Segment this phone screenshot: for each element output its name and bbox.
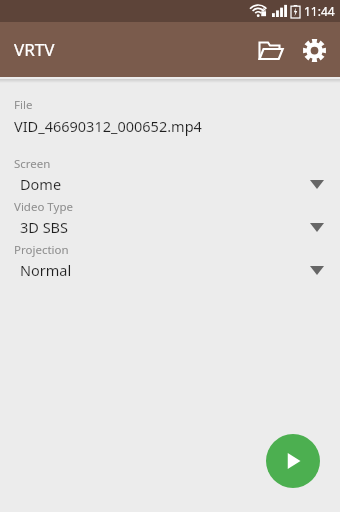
staticText: Projection	[14, 242, 69, 258]
staticText: Video Type	[14, 199, 73, 215]
button[interactable]: Play	[266, 434, 320, 488]
staticText: File	[14, 97, 33, 113]
staticText: 3D SBS	[20, 217, 68, 237]
button[interactable]: Screen	[0, 156, 340, 199]
staticText: Dome	[20, 174, 62, 194]
button[interactable]: Settings	[292, 28, 336, 72]
button[interactable]: Projection	[0, 242, 340, 285]
staticText: 11:44	[304, 3, 335, 19]
staticText: VRTV	[14, 38, 55, 61]
staticText: VID_46690312_000652.mp4	[14, 116, 202, 136]
staticText: Normal	[20, 260, 72, 280]
staticText: Screen	[14, 156, 51, 172]
button[interactable]: Open file	[248, 28, 292, 72]
button[interactable]: Video Type	[0, 199, 340, 242]
